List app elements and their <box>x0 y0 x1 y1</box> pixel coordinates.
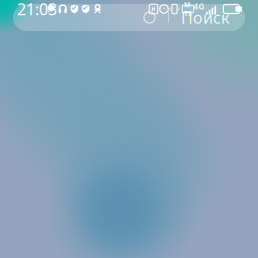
staticText: 4G <box>193 1 204 12</box>
button[interactable]: Поиск <box>13 4 245 31</box>
staticText: 21:03 <box>17 0 57 20</box>
staticText: Поиск <box>181 7 229 28</box>
staticText: MTS <box>184 0 192 18</box>
